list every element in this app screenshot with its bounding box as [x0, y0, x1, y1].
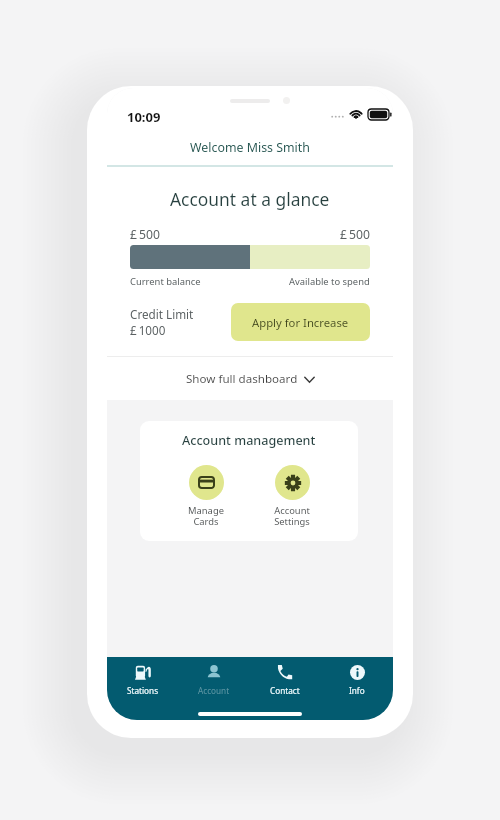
button[interactable]: Show full dashboard — [107, 357, 393, 400]
button[interactable]: Contact — [249, 660, 321, 700]
staticText: Apply for Increase — [252, 315, 349, 330]
staticText: Account management — [182, 432, 316, 449]
staticText: Contact — [270, 685, 300, 696]
staticText: Welcome Miss Smith — [190, 139, 310, 156]
button[interactable]: Manage cards — [183, 465, 229, 527]
staticText: £ 500 — [130, 226, 160, 243]
staticText: Show full dashboard — [186, 371, 298, 387]
staticText: Account — [198, 685, 230, 696]
button[interactable]: Apply for Increase — [231, 303, 370, 341]
button[interactable]: Account settings — [269, 465, 315, 527]
other: Account — [206, 665, 222, 679]
staticText: 10:09 — [127, 108, 161, 126]
staticText: Stations — [127, 685, 159, 696]
staticText: £ 1000 — [130, 322, 166, 338]
staticText: Manage Cards — [188, 504, 224, 527]
other: Manage cards — [198, 476, 215, 489]
staticText: Account at a glance — [170, 187, 330, 211]
other: Info — [350, 665, 365, 680]
button[interactable]: Info — [321, 660, 393, 700]
staticText: £ 500 — [340, 226, 370, 243]
other: Contact — [277, 664, 293, 680]
other: Account settings — [285, 475, 301, 491]
staticText: Credit Limit — [130, 306, 194, 322]
button[interactable]: Account — [178, 660, 249, 700]
staticText: Account Settings — [274, 504, 310, 527]
staticText: Available to spend — [289, 275, 370, 288]
staticText: Info — [349, 685, 365, 696]
other: Stations — [135, 665, 151, 680]
button[interactable]: Stations — [107, 660, 178, 700]
staticText: Current balance — [130, 275, 201, 288]
